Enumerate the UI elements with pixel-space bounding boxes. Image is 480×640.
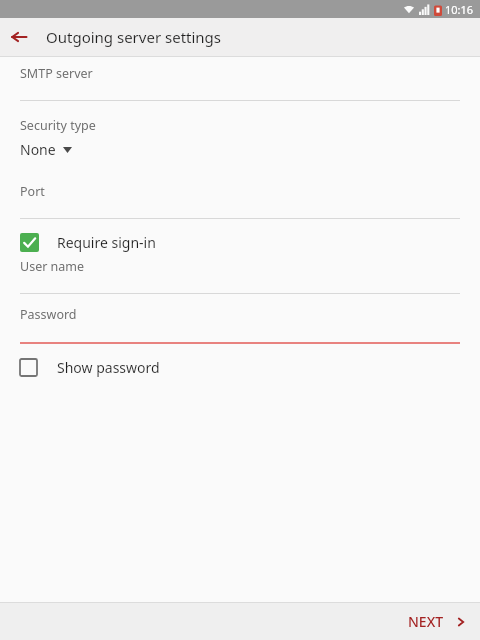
button[interactable]: Port — [0, 173, 480, 219]
staticText: NEXT — [408, 612, 444, 631]
staticText: None — [20, 140, 56, 159]
staticText: Port — [20, 183, 45, 200]
button[interactable]: NEXT — [392, 604, 480, 639]
button[interactable]: SMTP server — [0, 57, 480, 101]
staticText: Outgoing server settings — [46, 27, 222, 47]
staticText: Password — [20, 306, 77, 323]
staticText: Security type — [20, 117, 96, 134]
staticText: User name — [20, 258, 85, 275]
button[interactable]: Show password — [20, 358, 480, 377]
button[interactable]: Require sign-in — [20, 233, 480, 252]
button[interactable]: User name — [0, 252, 480, 294]
button[interactable]: Back — [0, 18, 38, 56]
staticText: Require sign-in — [57, 233, 156, 252]
staticText: Show password — [57, 358, 160, 377]
staticText: SMTP server — [20, 65, 93, 82]
button[interactable]: Security type — [0, 117, 480, 173]
staticText: 10:16 — [445, 2, 474, 17]
button[interactable]: Password — [0, 306, 480, 344]
